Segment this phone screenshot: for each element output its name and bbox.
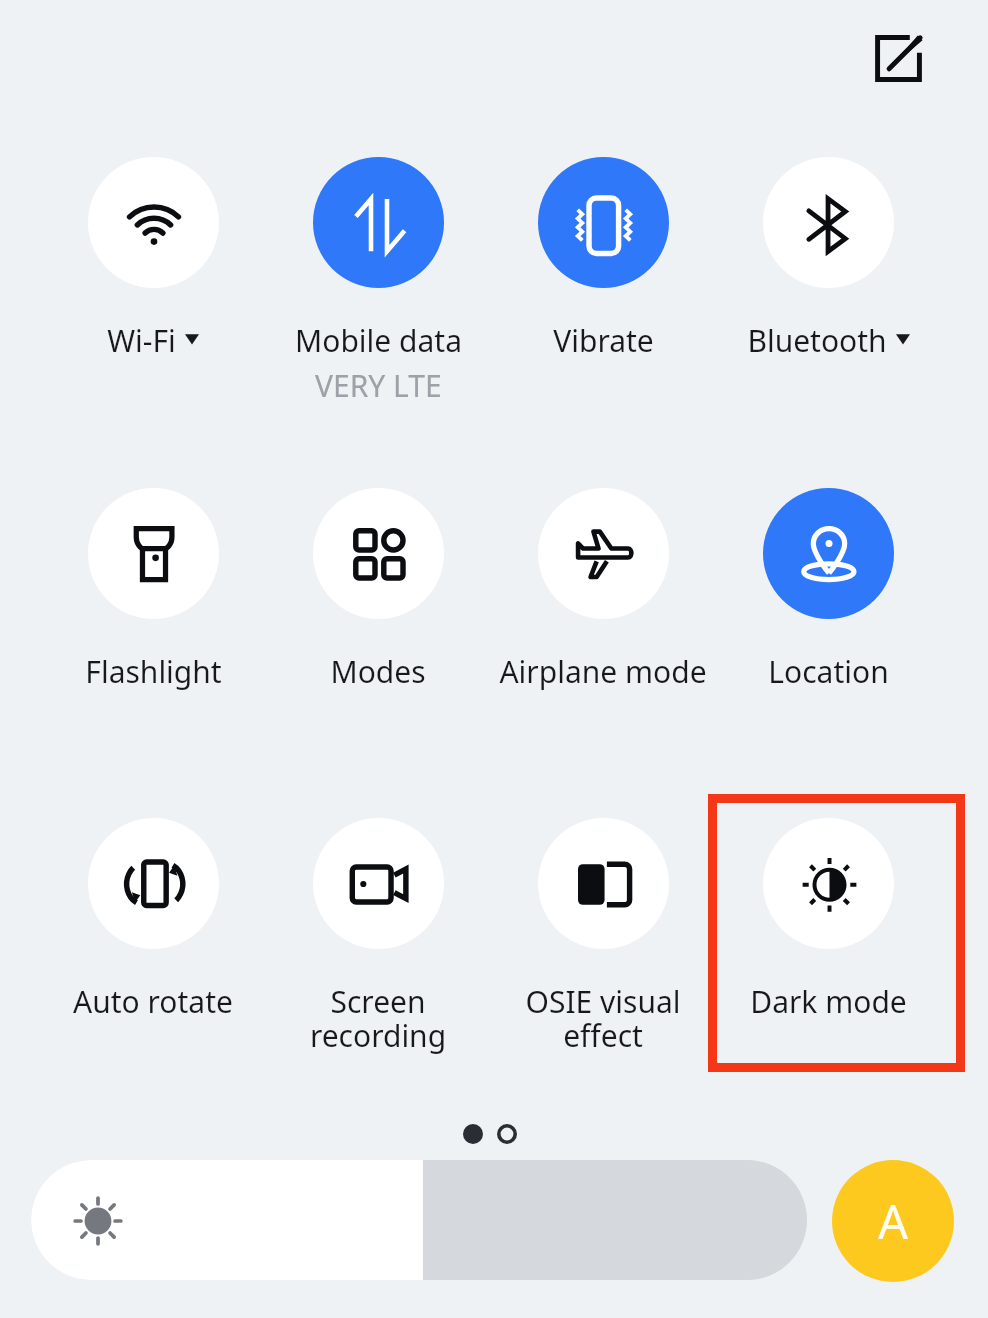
button[interactable]: Wi-Fi: [28, 157, 278, 407]
button[interactable]: Location: [703, 488, 953, 738]
staticText: Screen recording: [270, 981, 486, 1055]
staticText: OSIE visual effect: [495, 981, 711, 1055]
staticText: Auto rotate: [73, 981, 233, 1022]
button[interactable]: Auto rotate: [28, 818, 278, 1068]
staticText: Modes: [330, 651, 426, 692]
button[interactable]: Mobile data: [253, 157, 503, 407]
staticText: A: [878, 1189, 909, 1253]
staticText: Airplane mode: [499, 651, 707, 692]
staticText: Flashlight: [85, 651, 222, 692]
button[interactable]: Vibrate: [478, 157, 728, 407]
button[interactable]: Dark mode: [703, 818, 953, 1068]
button[interactable]: Flashlight: [28, 488, 278, 738]
staticText: Location: [768, 651, 889, 692]
staticText: Wi-Fi: [107, 320, 176, 361]
button[interactable]: Modes: [253, 488, 503, 738]
button[interactable]: Page 2: [497, 1124, 517, 1144]
staticText: Bluetooth: [747, 320, 887, 361]
staticText: Dark mode: [750, 981, 907, 1022]
staticText: VERY LTE: [315, 365, 442, 406]
button[interactable]: OSIE visual effect: [478, 818, 728, 1068]
button[interactable]: Bluetooth: [703, 157, 953, 407]
button[interactable]: Auto brightness: [832, 1160, 954, 1282]
button[interactable]: Airplane mode: [478, 488, 728, 738]
staticText: Mobile data: [295, 320, 462, 361]
button[interactable]: Brightness: [31, 1160, 807, 1280]
button[interactable]: Page 1: [463, 1124, 483, 1144]
staticText: Vibrate: [553, 320, 654, 361]
button[interactable]: Edit quick settings: [858, 18, 938, 98]
button[interactable]: Screen recording: [253, 818, 503, 1068]
